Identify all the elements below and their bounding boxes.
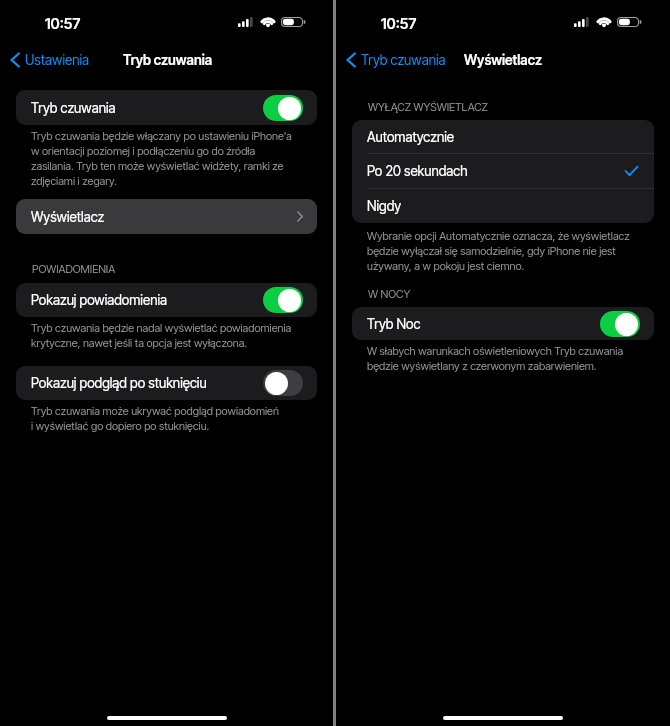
button[interactable]: Pokazuj podgląd po stuknięciu bbox=[16, 366, 317, 400]
staticText: Tryb czuwania będzie włączany po ustawie… bbox=[31, 128, 292, 188]
button[interactable]: Tryb czuwania bbox=[342, 49, 452, 71]
staticText: Wybranie opcji Automatycznie oznacza, że… bbox=[367, 228, 630, 273]
staticText: Tryb czuwania może ukrywać podgląd powia… bbox=[31, 403, 279, 433]
button[interactable]: Pokazuj powiadomienia bbox=[16, 283, 317, 317]
staticText: Pokazuj podgląd po stuknięciu bbox=[31, 375, 207, 391]
staticText: Tryb czuwania bbox=[123, 52, 212, 68]
staticText: Nigdy bbox=[367, 198, 402, 214]
button[interactable]: Automatycznie bbox=[352, 120, 654, 153]
staticText: Ustawienia bbox=[25, 52, 89, 68]
staticText: Pokazuj powiadomienia bbox=[31, 292, 167, 308]
button[interactable]: Switch on bbox=[600, 311, 640, 337]
button[interactable]: Switch on bbox=[263, 95, 303, 121]
staticText: Automatycznie bbox=[367, 129, 454, 145]
button[interactable]: Tryb Noc bbox=[352, 307, 654, 340]
staticText: W słabych warunkach oświetleniowych Tryb… bbox=[367, 343, 624, 373]
button[interactable]: Switch off bbox=[263, 370, 303, 396]
staticText: Tryb Noc bbox=[367, 316, 421, 332]
staticText: POWIADOMIENIA bbox=[32, 262, 116, 275]
staticText: Wyświetlacz bbox=[464, 52, 543, 68]
button[interactable]: Po 20 sekundach bbox=[352, 154, 654, 188]
staticText: Tryb czuwania bbox=[361, 52, 446, 68]
staticText: 10:57 bbox=[381, 15, 417, 33]
staticText: WYŁĄCZ WYŚWIETLACZ bbox=[368, 100, 488, 113]
other: Selected bbox=[625, 166, 638, 176]
staticText: Tryb czuwania bbox=[31, 100, 116, 116]
button[interactable]: Nigdy bbox=[352, 189, 654, 223]
other: Open bbox=[297, 211, 303, 222]
staticText: Tryb czuwania będzie nadal wyświetlać po… bbox=[31, 320, 292, 350]
staticText: Wyświetlacz bbox=[31, 209, 105, 225]
staticText: 10:57 bbox=[45, 15, 81, 33]
button[interactable]: Switch on bbox=[263, 287, 303, 313]
button[interactable]: Tryb czuwania bbox=[16, 90, 317, 125]
staticText: Po 20 sekundach bbox=[367, 163, 468, 179]
staticText: W NOCY bbox=[368, 287, 411, 300]
button[interactable]: Wyświetlacz bbox=[16, 199, 317, 234]
button[interactable]: Ustawienia bbox=[6, 49, 95, 71]
